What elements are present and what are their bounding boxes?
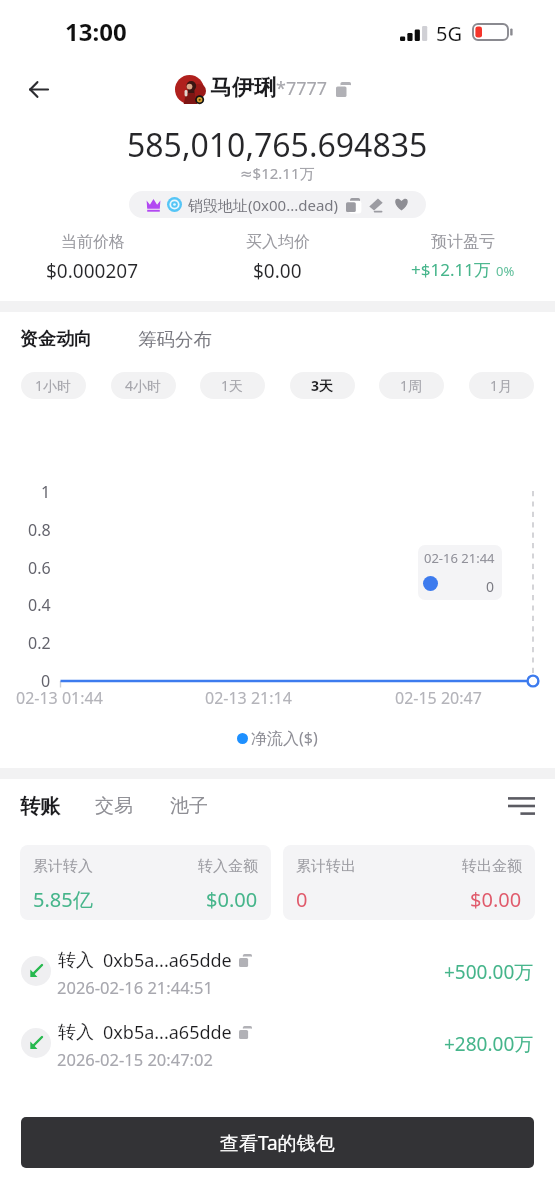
staticText: 0.4 [28, 594, 51, 616]
button[interactable]: Back [17, 68, 60, 111]
staticText: 0.6 [28, 557, 51, 579]
button[interactable]: 资金动向 [20, 328, 92, 351]
staticText: 查看Ta的钱包 [220, 1130, 335, 1156]
staticText: 1小时 [35, 376, 72, 395]
staticText: 转入 [58, 1021, 94, 1044]
staticText: 净流入($) [251, 727, 318, 749]
button[interactable]: 转账 [20, 794, 60, 819]
button[interactable]: 1月 [469, 372, 534, 399]
button[interactable]: 1天 [200, 372, 265, 399]
staticText: $0.00 [470, 886, 522, 913]
staticText: 0% [496, 262, 515, 280]
staticText: ≈$12.11万 [240, 163, 315, 183]
button[interactable]: 销毁地址(0x00...dead) [129, 191, 426, 218]
button[interactable]: 1小时 [21, 372, 86, 399]
staticText: 累计转入 [33, 857, 93, 876]
staticText: 0xb5a...a65dde [103, 948, 232, 973]
staticText: 2026-02-16 21:44:51 [57, 976, 213, 998]
button[interactable]: 交易 [95, 794, 133, 818]
staticText: 转出金额 [462, 857, 522, 876]
staticText: 转入 [58, 949, 94, 972]
staticText: 13:00 [65, 15, 127, 48]
staticText: 1周 [400, 376, 423, 395]
button[interactable]: 马伊琍 [175, 73, 351, 105]
staticText: 0 [41, 670, 51, 692]
staticText: 池子 [170, 794, 208, 818]
button[interactable]: 查看Ta的钱包 [21, 1117, 534, 1168]
staticText: 02-13 01:44 [16, 687, 103, 709]
staticText: 预计盈亏 [431, 232, 495, 252]
staticText: 交易 [95, 794, 133, 818]
staticText: 筹码分布 [138, 328, 212, 351]
button[interactable]: 转入 [0, 943, 555, 999]
staticText: 0 [296, 886, 308, 913]
staticText: $0.00 [253, 258, 302, 284]
staticText: +500.00万 [444, 959, 534, 985]
button[interactable]: 1周 [379, 372, 444, 399]
staticText: 销毁地址(0x00...dead) [188, 195, 339, 215]
staticText: 3天 [311, 376, 334, 395]
staticText: 马伊琍 [210, 74, 276, 102]
staticText: 1天 [221, 376, 244, 395]
staticText: 1 [41, 481, 51, 503]
staticText: 5G [436, 20, 462, 47]
staticText: 转账 [20, 794, 60, 819]
staticText: +$12.11万 [411, 258, 491, 281]
button[interactable]: 3天 [290, 372, 355, 399]
staticText: 买入均价 [246, 232, 310, 252]
staticText: 585,010,765.694835 [127, 123, 428, 167]
staticText: 当前价格 [61, 232, 125, 252]
staticText: 累计转出 [296, 857, 356, 876]
staticText: 02-15 20:47 [395, 687, 482, 709]
staticText: 0.2 [28, 632, 51, 654]
button[interactable]: 转入 [0, 1015, 555, 1071]
staticText: 4小时 [125, 376, 162, 395]
staticText: 02-16 21:44 [424, 549, 495, 567]
staticText: *7777 [276, 76, 328, 101]
staticText: 0xb5a...a65dde [103, 1020, 232, 1045]
button[interactable]: 筹码分布 [138, 328, 212, 351]
staticText: 2026-02-15 20:47:02 [57, 1048, 213, 1070]
staticText: $0.000207 [46, 258, 139, 284]
button[interactable]: Filter [506, 791, 536, 821]
staticText: 0 [486, 577, 495, 596]
button[interactable]: 池子 [170, 794, 208, 818]
staticText: 转入金额 [198, 857, 258, 876]
staticText: 02-13 21:14 [205, 687, 292, 709]
staticText: 1月 [490, 376, 513, 395]
staticText: 资金动向 [20, 328, 92, 351]
staticText: 0.8 [28, 519, 51, 541]
staticText: $0.00 [206, 886, 258, 913]
button[interactable]: 4小时 [111, 372, 176, 399]
staticText: 5.85亿 [33, 886, 93, 913]
staticText: +280.00万 [444, 1031, 534, 1057]
